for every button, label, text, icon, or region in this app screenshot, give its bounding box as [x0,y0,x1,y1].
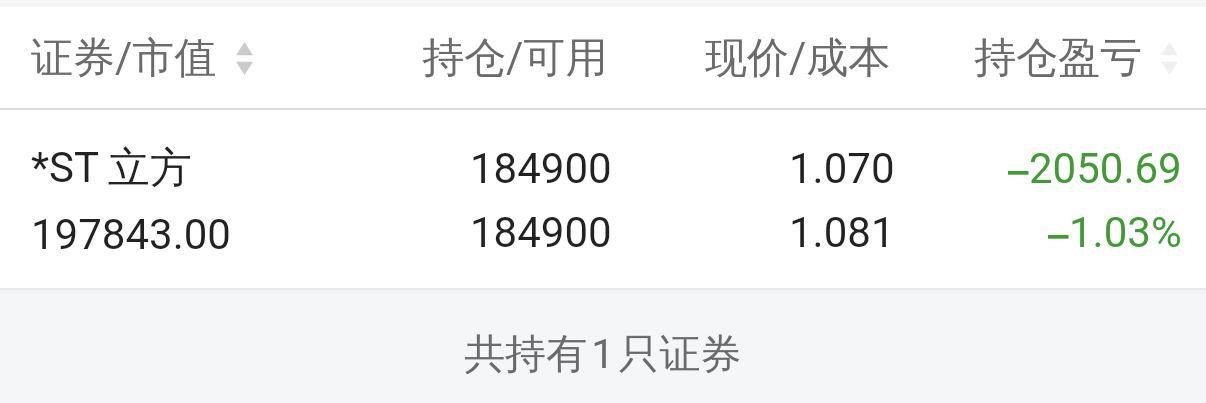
button[interactable]: 按持仓盈亏排序 [974,32,1178,85]
staticText: 现价/成本 [705,32,891,85]
staticText: *ST 立方 [31,142,192,195]
staticText: 持仓盈亏 [974,32,1142,85]
staticText: 证券/市值 [31,32,217,85]
staticText: 197843.00 [31,210,231,259]
staticText: 184900 [470,144,612,193]
staticText: 持仓/可用 [422,32,608,85]
staticText: 1.03% [1069,208,1182,257]
staticText: 共持有 1 只证券 [464,329,742,381]
button[interactable]: 按证券市值排序 [31,32,253,85]
button[interactable]: 共持有 1 只证券 [0,290,1206,403]
staticText: 184900 [470,208,612,257]
staticText: 1.070 [789,144,895,193]
staticText: 2050.69 [1029,144,1182,193]
button[interactable]: *ST 立方 [0,110,1206,288]
staticText: 1.081 [789,208,895,257]
